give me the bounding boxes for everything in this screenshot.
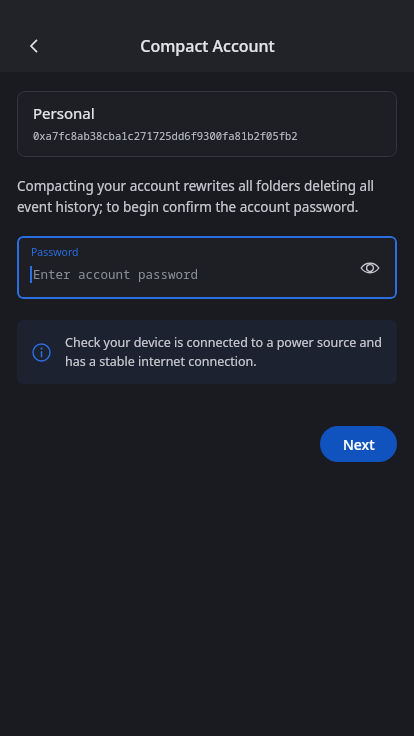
- staticText: Personal: [33, 103, 95, 123]
- staticText: 0xa7fc8ab38cba1c271725dd6f9300fa81b2f05f…: [33, 129, 298, 143]
- staticText: Compacting your account rewrites all fol…: [17, 177, 397, 216]
- staticText: Password: [31, 245, 79, 259]
- button[interactable]: Next: [320, 426, 397, 462]
- button[interactable]: Personal: [17, 91, 397, 157]
- button[interactable]: Back: [10, 22, 58, 70]
- staticText: Compact Account: [140, 35, 275, 57]
- staticText: Check your device is connected to a powe…: [65, 334, 383, 370]
- staticText: Enter account password: [33, 266, 199, 283]
- button[interactable]: Password: [17, 236, 397, 299]
- staticText: Next: [343, 435, 375, 454]
- button[interactable]: Show password: [352, 250, 388, 286]
